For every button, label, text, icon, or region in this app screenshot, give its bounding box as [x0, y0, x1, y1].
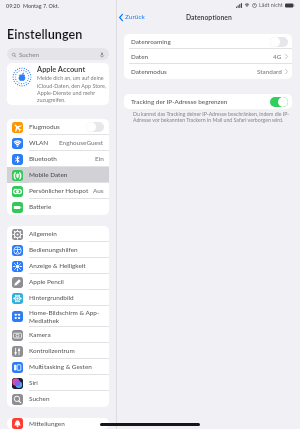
staticText: Montag 7. Okt. [23, 3, 59, 9]
staticText: Multitasking & Gesten [29, 363, 92, 371]
staticText: Flugmodus [29, 123, 60, 131]
staticText: Datenroaming [131, 38, 171, 46]
button[interactable]: Batterie [7, 199, 109, 215]
staticText: Bluetooth [29, 155, 57, 163]
staticText: Siri [29, 379, 38, 387]
staticText: Persönlicher Hotspot [29, 187, 89, 195]
staticText: Mitteilungen [29, 420, 65, 428]
staticText: Hintergrundbild [29, 294, 74, 302]
button[interactable]: Multitasking & Gesten [7, 359, 109, 375]
button[interactable]: Apple Pencil [7, 274, 109, 290]
button[interactable]: Siri [7, 375, 109, 391]
button[interactable]: Allgemein [7, 226, 109, 242]
staticText: Lädt nicht [259, 2, 283, 8]
staticText: Du kannst das Tracking deiner IP-Adresse… [133, 111, 293, 123]
staticText: Einstellungen [7, 27, 83, 42]
staticText: Tracking der IP-Adresse begrenzen [131, 98, 228, 106]
button[interactable]: Apple Account [7, 63, 109, 105]
button[interactable]: Tracking der IP-Adresse begrenzen [124, 94, 292, 109]
staticText: WLAN [29, 139, 49, 147]
button[interactable]: Mitteilungen [7, 418, 109, 429]
staticText: Home-Bildschirm & App-Mediathek [29, 309, 104, 325]
button[interactable]: Mobile Daten [7, 167, 109, 183]
staticText: Apple Account [37, 65, 86, 74]
staticText: Anzeige & Helligkeit [29, 262, 86, 270]
staticText: Kamera [29, 331, 51, 339]
staticText: EnghouseGuest [59, 139, 104, 147]
staticText: Suchen [29, 395, 50, 403]
staticText: Datenoptionen [186, 13, 232, 21]
button[interactable]: Toggle off [270, 37, 288, 47]
button[interactable]: Toggle off [86, 122, 104, 132]
button[interactable]: Kontrollzentrum [7, 343, 109, 359]
button[interactable]: Bedienungshilfen [7, 242, 109, 258]
button[interactable]: Anzeige & Helligkeit [7, 258, 109, 274]
button[interactable]: Suchen [7, 391, 109, 407]
button[interactable]: Zurück [119, 13, 145, 21]
staticText: Standard [257, 68, 282, 76]
staticText: Kontrollzentrum [29, 347, 75, 355]
staticText: Mobile Daten [29, 171, 68, 179]
staticText: Apple Pencil [29, 278, 64, 286]
button[interactable]: Datenroaming [124, 34, 292, 49]
button[interactable]: Home-Bildschirm & App-Mediathek [7, 306, 109, 327]
button[interactable]: Datenmodus [124, 64, 292, 79]
staticText: Ein [95, 155, 104, 163]
staticText: Zurück [125, 13, 145, 21]
staticText: Suchen [19, 51, 39, 58]
staticText: Daten [131, 53, 149, 61]
staticText: Datenmodus [131, 68, 167, 76]
staticText: Aus [93, 187, 104, 195]
button[interactable]: Daten [124, 49, 292, 64]
button[interactable]: Persönlicher Hotspot [7, 183, 109, 199]
button[interactable]: WLAN [7, 135, 109, 151]
staticText: Bedienungshilfen [29, 246, 78, 254]
button[interactable]: Bluetooth [7, 151, 109, 167]
button[interactable]: Toggle on [270, 97, 288, 107]
staticText: 09:20 [6, 3, 20, 9]
button[interactable]: Hintergrundbild [7, 290, 109, 306]
staticText: Melde dich an, um auf deine iCloud-Daten… [37, 75, 108, 103]
staticText: Batterie [29, 203, 52, 211]
button[interactable]: Kamera [7, 327, 109, 343]
button[interactable]: Flugmodus [7, 119, 109, 135]
staticText: Allgemein [29, 230, 57, 238]
button[interactable]: Suchen [7, 48, 109, 60]
staticText: 4G [273, 53, 282, 61]
